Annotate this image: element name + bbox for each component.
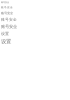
staticText: 账号安全	[1, 1, 9, 4]
staticText: 账号安全	[1, 11, 13, 15]
staticText: 设置	[1, 31, 9, 36]
staticText: 账号安全	[1, 17, 17, 22]
staticText: 账号安全	[1, 6, 13, 9]
staticText: 设置	[1, 38, 11, 45]
staticText: 账号安全	[1, 24, 17, 29]
